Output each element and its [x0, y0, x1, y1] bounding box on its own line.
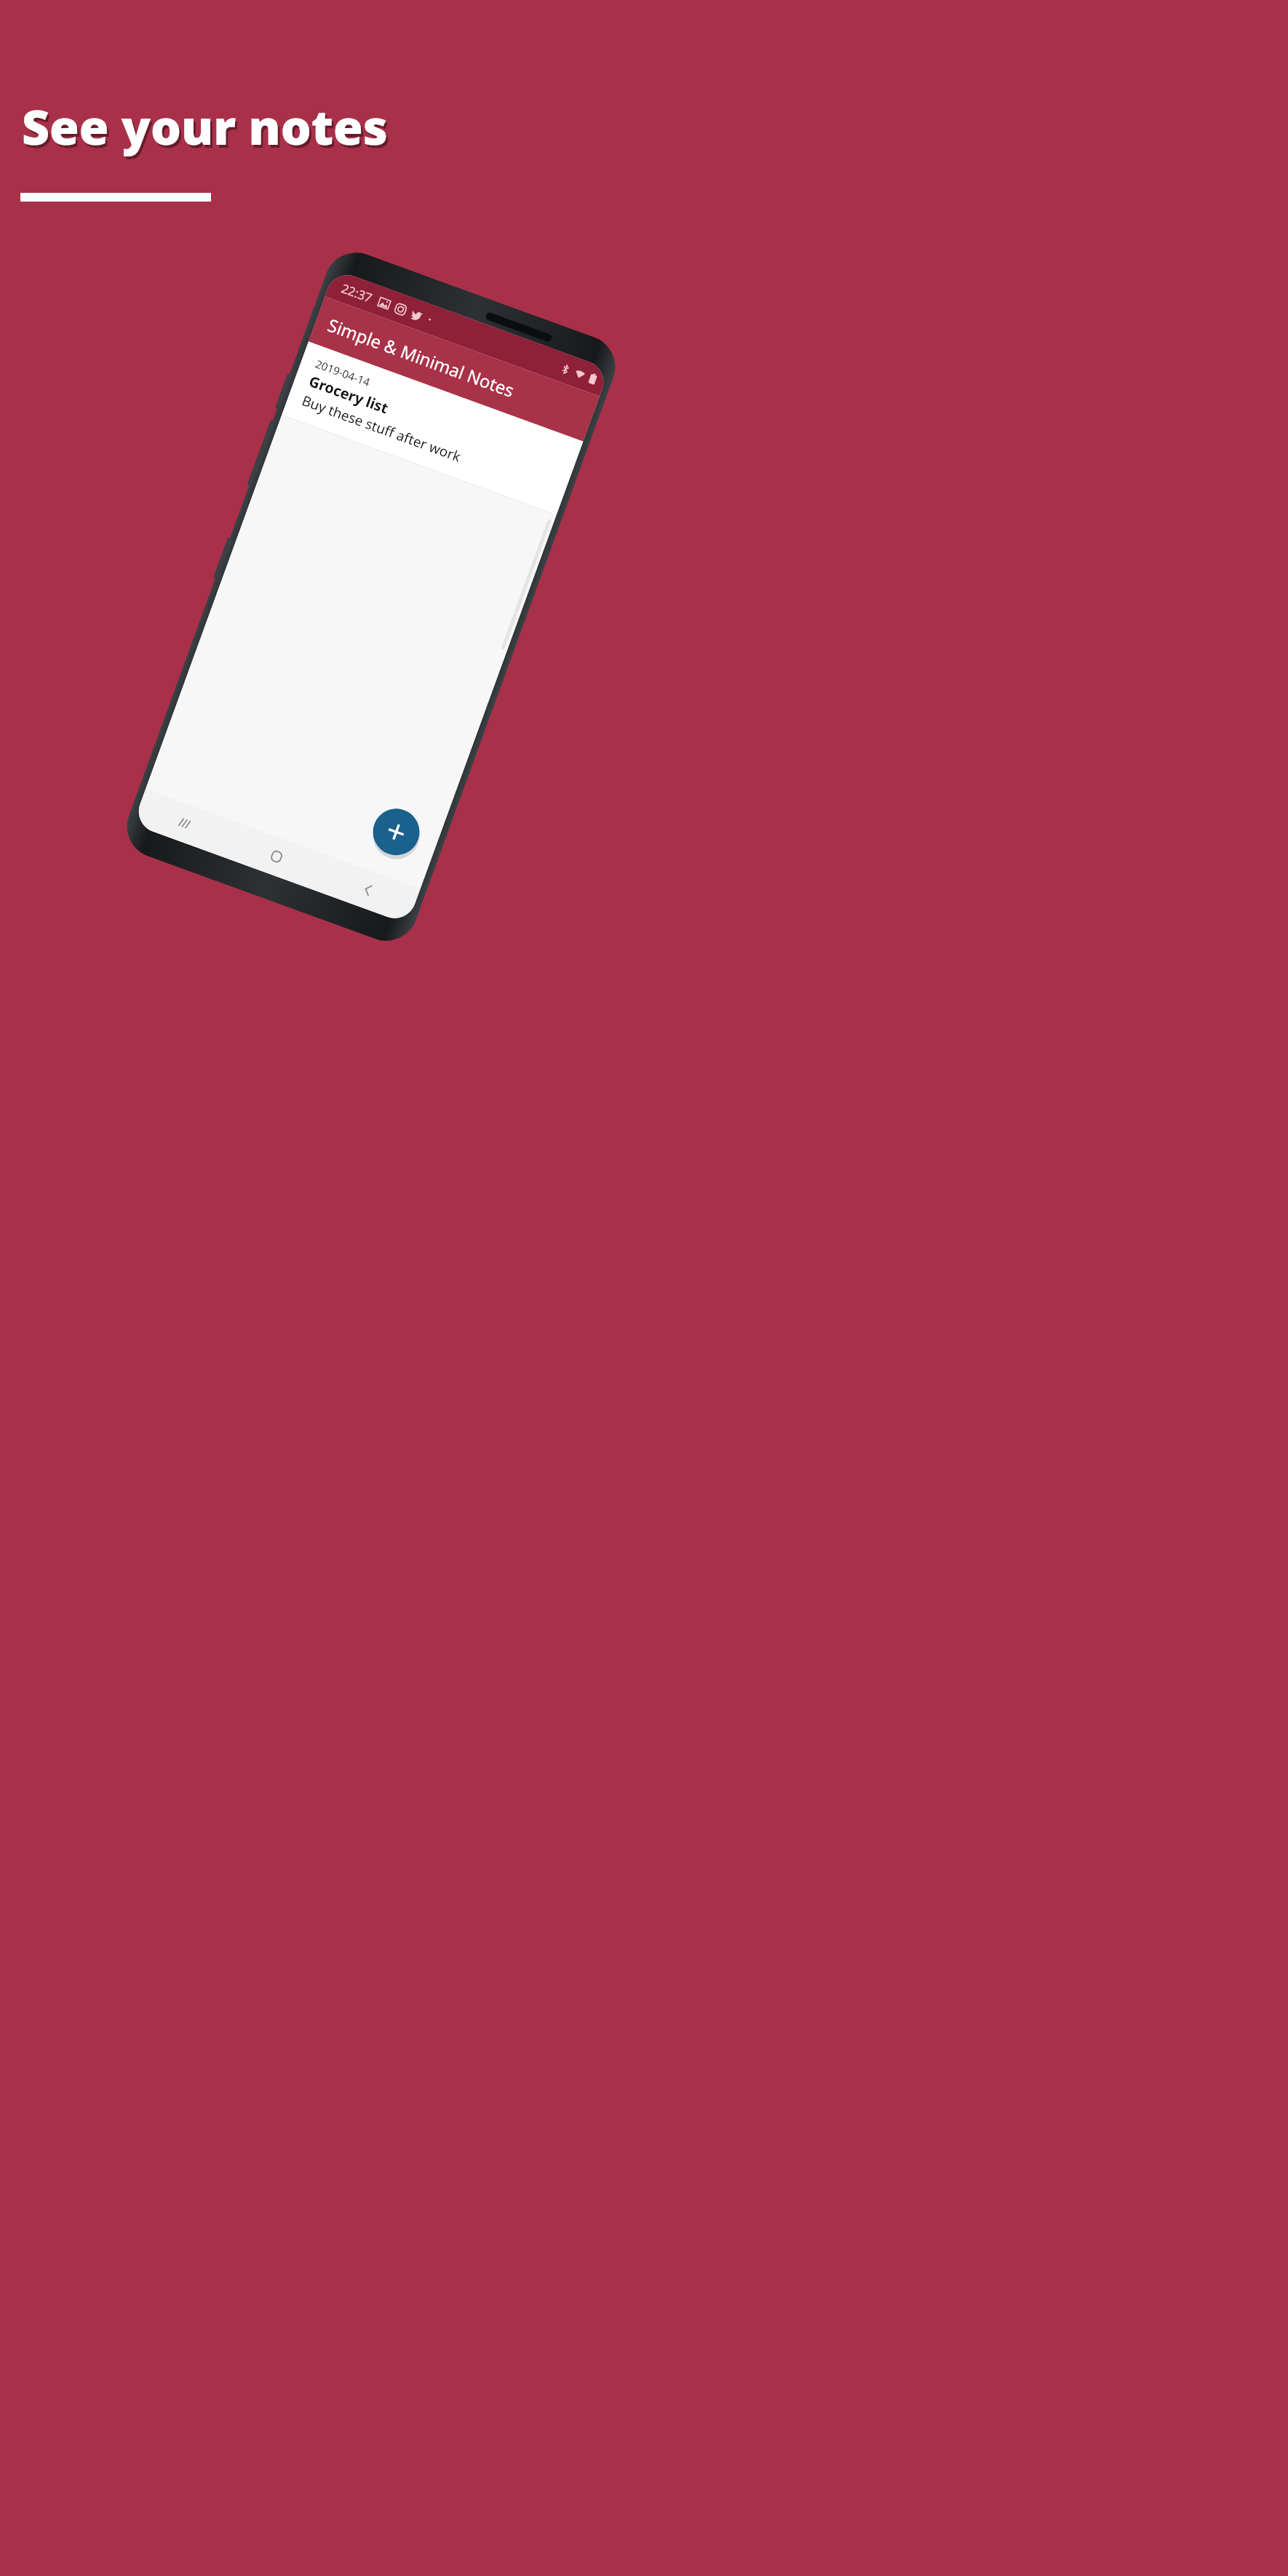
button[interactable]: 2019-04-14 — [282, 342, 583, 515]
button[interactable]: Home — [224, 822, 329, 891]
staticText: Buy these stuff after work — [299, 391, 464, 466]
staticText: See your notes — [22, 93, 388, 159]
staticText: 2019-04-14 — [314, 356, 373, 389]
staticText: Grocery list — [306, 371, 391, 418]
button[interactable]: Back — [316, 855, 420, 924]
button[interactable]: Simple & Minimal Notes — [308, 296, 600, 442]
button[interactable]: Add note — [366, 802, 426, 862]
staticText: 22:37 — [339, 280, 375, 306]
staticText: Simple & Minimal Notes — [325, 313, 518, 403]
button[interactable]: Recents — [133, 789, 237, 858]
staticText: See your notes — [24, 96, 390, 162]
